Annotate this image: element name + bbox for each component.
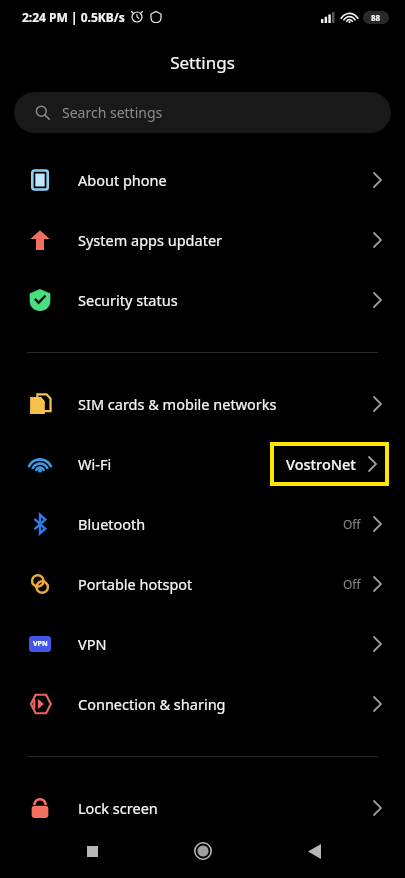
staticText: Bluetooth [78, 514, 146, 534]
staticText: Portable hotspot [78, 574, 193, 594]
staticText: VPN [78, 634, 107, 654]
button[interactable]: SIM cards & mobile networks [0, 374, 405, 434]
button[interactable]: Connection & sharing [0, 674, 405, 734]
staticText: Off [343, 516, 361, 532]
staticText: VostroNet [286, 454, 356, 474]
staticText: VPN [33, 639, 48, 649]
button[interactable]: Back [294, 831, 334, 871]
button[interactable]: Lock screen [0, 778, 405, 838]
button[interactable]: Home [183, 831, 223, 871]
staticText: Off [343, 576, 361, 592]
button[interactable]: Bluetooth [0, 494, 405, 554]
button[interactable]: Recent apps [72, 831, 112, 871]
staticText: 88 [371, 12, 381, 23]
button[interactable]: System apps updater [0, 210, 405, 270]
staticText: Settings [170, 51, 235, 74]
staticText: 2:24 PM | 0.5KB/s [22, 9, 125, 25]
button[interactable]: Security status [0, 270, 405, 330]
button[interactable]: Portable hotspot [0, 554, 405, 614]
staticText: Wi-Fi [78, 454, 112, 474]
staticText: SIM cards & mobile networks [78, 394, 277, 414]
staticText: Lock screen [78, 798, 158, 818]
staticText: Connection & sharing [78, 694, 226, 714]
staticText: About phone [78, 170, 167, 190]
staticText: System apps updater [78, 230, 223, 250]
staticText: Security status [78, 290, 178, 310]
staticText: Search settings [62, 103, 163, 122]
button[interactable]: Wi-Fi [0, 434, 405, 494]
button[interactable]: Search settings [14, 92, 391, 133]
button[interactable]: VPN [0, 614, 405, 674]
button[interactable]: About phone [0, 150, 405, 210]
